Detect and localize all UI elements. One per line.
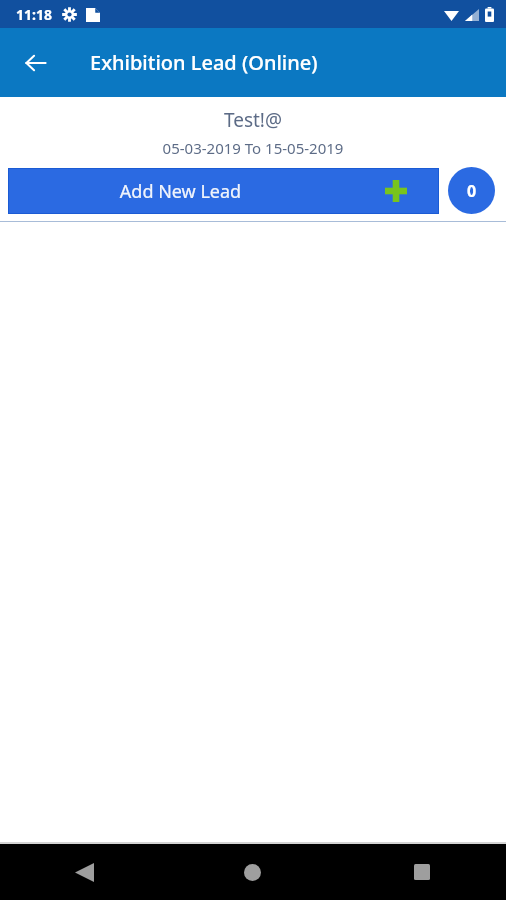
staticText: Exhibition Lead (Online) (90, 49, 318, 76)
button[interactable]: Recent apps (337, 844, 506, 900)
staticText: Test!@ (0, 107, 506, 133)
button[interactable]: 0 (448, 167, 495, 214)
staticText: Add New Lead (8, 179, 353, 204)
staticText: 11:18 (16, 5, 52, 24)
button[interactable]: Back (8, 35, 64, 91)
staticText: 0 (467, 180, 477, 202)
button[interactable]: Back (0, 844, 168, 900)
button[interactable]: Add New Lead (8, 168, 439, 214)
button[interactable]: Home (168, 844, 337, 900)
staticText: 05-03-2019 To 15-05-2019 (0, 138, 506, 158)
